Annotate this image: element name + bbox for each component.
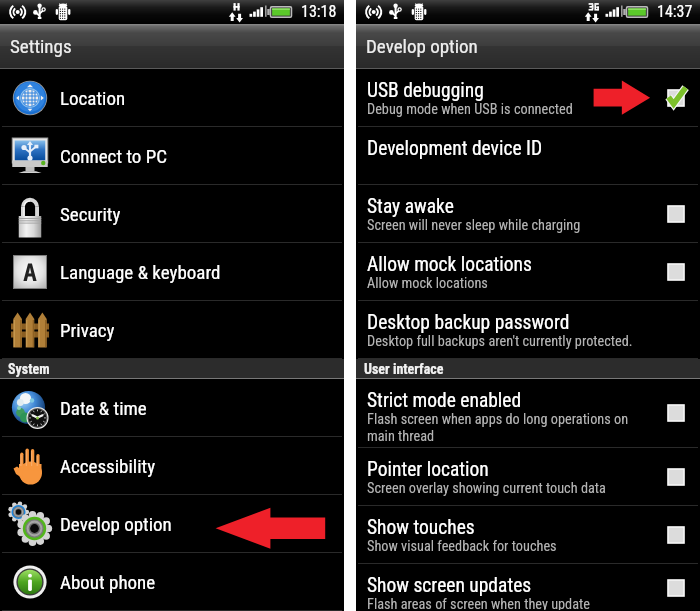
staticText: System (8, 361, 50, 377)
button[interactable]: Show touches (356, 506, 700, 563)
button[interactable]: Security (0, 185, 344, 242)
button[interactable]: Stay awake (356, 185, 700, 242)
staticText: 14:37 (657, 2, 693, 21)
button[interactable]: Development device ID (356, 127, 700, 184)
button[interactable]: Privacy (0, 301, 344, 358)
staticText: Flash screen when apps do long operation… (367, 411, 652, 445)
staticText: Desktop full backups aren't currently pr… (367, 333, 633, 350)
staticText: Develop option (60, 513, 172, 535)
staticText: Show screen updates (367, 574, 532, 597)
staticText: USB debugging (367, 79, 484, 102)
staticText: Strict mode enabled (367, 389, 522, 412)
staticText: Allow mock locations (367, 253, 532, 276)
button[interactable]: Language & keyboard (0, 243, 344, 300)
button[interactable]: Develop option (0, 495, 344, 552)
staticText: Allow mock locations (367, 275, 488, 292)
staticText: Desktop backup password (367, 311, 570, 334)
button[interactable]: Strict mode enabled (356, 379, 700, 447)
staticText: Stay awake (367, 195, 454, 218)
button[interactable]: Location (0, 69, 344, 126)
staticText: Develop option (366, 35, 478, 57)
staticText: Connect to PC (60, 145, 168, 167)
staticText: Language & keyboard (60, 261, 221, 283)
staticText: 13:18 (301, 2, 337, 21)
staticText: Show touches (367, 516, 475, 539)
button[interactable]: Pointer location (356, 448, 700, 505)
button[interactable]: Desktop backup password (356, 301, 700, 358)
staticText: Debug mode when USB is connected (367, 101, 573, 118)
staticText: Screen overlay showing current touch dat… (367, 480, 606, 497)
button[interactable]: Show screen updates (356, 564, 700, 611)
other: Pointer to USB debugging checkbox (356, 0, 700, 611)
staticText: Show visual feedback for touches (367, 538, 557, 555)
staticText: Pointer location (367, 458, 489, 481)
staticText: Development device ID (367, 137, 543, 160)
other: Pointer to Develop option (0, 0, 344, 611)
button[interactable]: USB debugging (356, 69, 700, 126)
staticText: About phone (60, 571, 156, 593)
button[interactable]: Date & time (0, 379, 344, 436)
staticText: Screen will never sleep while charging (367, 217, 581, 234)
staticText: Flash areas of screen when they update (367, 596, 590, 610)
staticText: Location (60, 87, 126, 109)
button[interactable]: About phone (0, 553, 344, 610)
button[interactable]: Allow mock locations (356, 243, 700, 300)
button[interactable]: Connect to PC (0, 127, 344, 184)
staticText: Date & time (60, 397, 147, 419)
staticText: Privacy (60, 319, 115, 341)
staticText: Security (60, 203, 121, 225)
staticText: User interface (364, 361, 444, 377)
staticText: Settings (10, 35, 72, 57)
staticText: Accessibility (60, 455, 156, 477)
button[interactable]: Accessibility (0, 437, 344, 494)
